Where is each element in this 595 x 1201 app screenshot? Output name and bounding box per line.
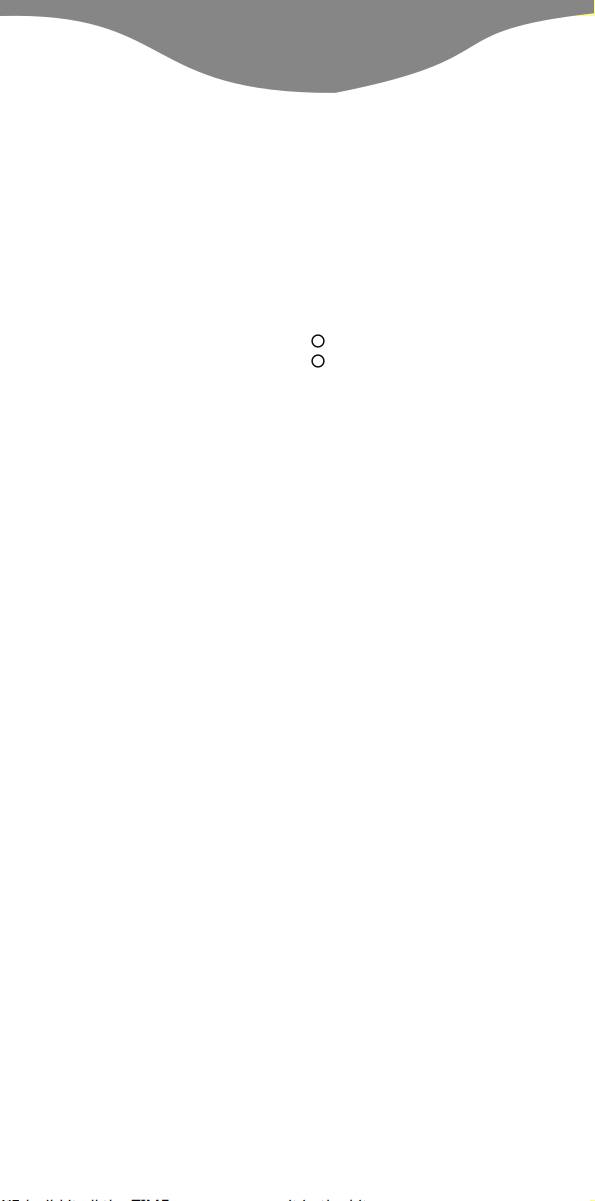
- staticText: WE: [0, 1195, 20, 1201]
- staticText: HELP to build it all the TIME: [0, 1195, 169, 1201]
- button[interactable]: Second option: [310, 353, 326, 369]
- staticText: it in the kit: [288, 1195, 368, 1201]
- button[interactable]: First option: [310, 333, 326, 349]
